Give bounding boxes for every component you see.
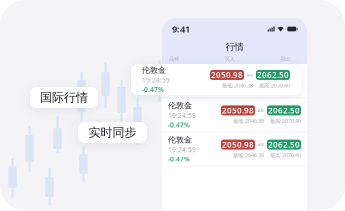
staticText: 2050.98 (211, 70, 243, 80)
staticText: 国际行情 (40, 90, 88, 105)
staticText: 2062.50 (257, 70, 289, 80)
staticText: AB (258, 142, 264, 147)
button[interactable]: 实时同步 (78, 122, 147, 143)
staticText: 品种 (169, 56, 179, 62)
staticText: 最高: 2070.40 (270, 83, 301, 90)
staticText: AB (258, 108, 264, 113)
staticText: 2062.50 (268, 105, 300, 116)
staticText: 19:24:59 (168, 77, 196, 86)
button[interactable]: 国际行情 (30, 87, 98, 108)
staticText: 19:24:59 (168, 145, 196, 154)
staticText: 实时同步 (88, 125, 136, 140)
button[interactable]: 伦敦金 (162, 64, 307, 97)
button[interactable]: 伦敦金 (162, 98, 307, 132)
staticText: -0.47% (168, 120, 190, 129)
staticText: 最低: 2046.38 (233, 152, 264, 159)
staticText: 卖出 (280, 56, 290, 62)
staticText: 行情 (225, 41, 243, 53)
staticText: 伦敦金 (168, 135, 192, 145)
staticText: 2050.98 (222, 139, 254, 150)
staticText: 最高: 2070.40 (270, 117, 301, 124)
staticText: AB (258, 74, 264, 79)
staticText: 9:41 (172, 23, 190, 35)
staticText: 最低: 2046.38 (233, 83, 264, 90)
staticText: 2062.50 (268, 71, 300, 81)
staticText: 伦敦金 (142, 65, 166, 75)
button[interactable]: 伦敦金 (162, 132, 307, 166)
staticText: -0.47% (168, 155, 190, 163)
staticText: 买入 (224, 56, 234, 62)
staticText: -0.47% (142, 85, 164, 94)
staticText: 2050.98 (222, 105, 254, 116)
staticText: 伦敦金 (168, 101, 192, 110)
staticText: 最高: 2070.40 (259, 82, 290, 89)
staticText: 19:24:59 (142, 76, 170, 84)
staticText: 2050.98 (222, 71, 254, 81)
staticText: 19:24:59 (168, 111, 196, 120)
button[interactable]: 伦敦金 (131, 64, 301, 95)
staticText: 最低: 2046.38 (222, 82, 253, 89)
staticText: 最高: 2070.40 (270, 152, 301, 159)
staticText: 2062.50 (268, 139, 300, 150)
staticText: AB (247, 72, 253, 78)
staticText: 最低: 2046.38 (233, 117, 264, 124)
